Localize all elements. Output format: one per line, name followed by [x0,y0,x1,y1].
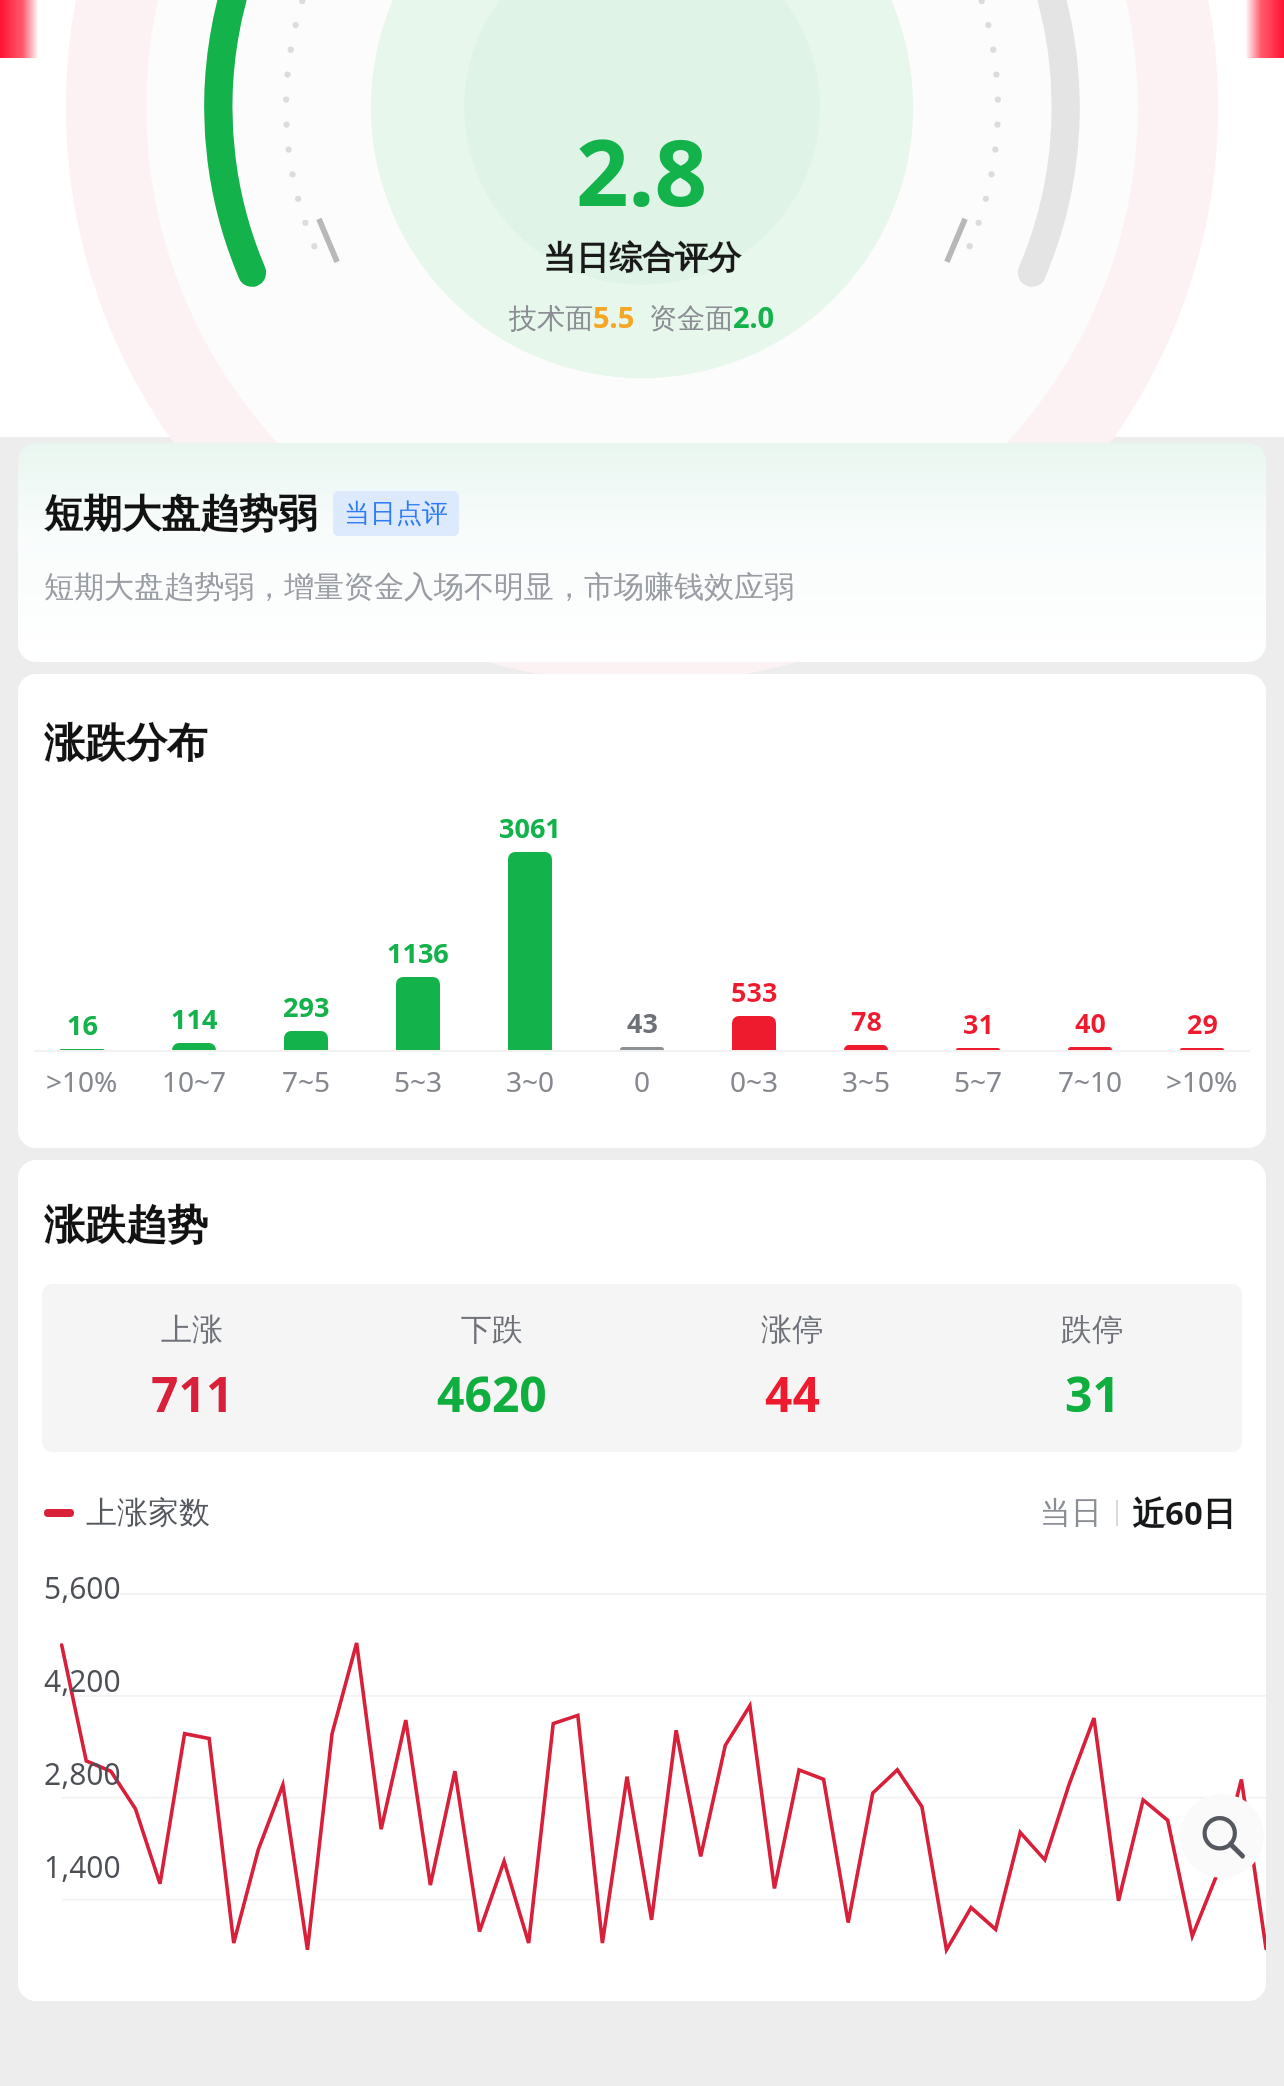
staticText: 0 [634,1062,651,1100]
staticText: 4620 [437,1361,547,1426]
staticText: 跌停 [1061,1310,1123,1349]
staticText: 533 [731,973,778,1010]
staticText: 上涨家数 [86,1493,210,1532]
staticText: 上涨 [161,1310,223,1349]
button[interactable]: 近60日 [1128,1490,1240,1535]
staticText: 31 [1065,1361,1120,1426]
button[interactable]: 短期大盘趋势弱 [18,443,1266,662]
staticText: 3~0 [506,1062,555,1100]
staticText: 5,600 [44,1567,121,1608]
staticText: >10% [46,1062,118,1100]
staticText: 技术面5.5 资金面2.0 [509,297,775,336]
staticText: 当日 [1040,1493,1102,1532]
staticText: 7~10 [1058,1062,1123,1100]
staticText: 40 [1075,1004,1106,1041]
button[interactable]: 当日 [1036,1493,1106,1532]
staticText: 涨停 [761,1310,823,1349]
staticText: 78 [851,1002,882,1039]
staticText: 293 [283,988,330,1025]
staticText: 短期大盘趋势弱 [44,489,317,538]
staticText: 1136 [387,934,449,971]
staticText: >10% [1166,1062,1238,1100]
staticText: 4,200 [44,1660,121,1701]
staticText: 1,400 [44,1846,121,1887]
staticText: 43 [627,1004,658,1041]
staticText: 2,800 [44,1753,121,1794]
staticText: 5~7 [954,1062,1003,1100]
staticText: 5~3 [394,1062,443,1100]
staticText: 当日综合评分 [543,237,741,279]
staticText: 114 [171,1000,218,1037]
staticText: 29 [1187,1005,1218,1042]
staticText: 16 [67,1006,98,1043]
button[interactable]: Search [1180,1794,1264,1878]
staticText: 3~5 [842,1062,891,1100]
staticText: 当日点评 [344,497,448,530]
staticText: 短期大盘趋势弱，增量资金入场不明显，市场赚钱效应弱 [44,568,794,606]
staticText: 44 [765,1361,820,1426]
staticText: 下跌 [461,1310,523,1349]
staticText: 0~3 [730,1062,779,1100]
staticText: 近60日 [1132,1490,1236,1535]
staticText: 涨跌分布 [44,718,208,770]
staticText: 7~5 [282,1062,331,1100]
button[interactable]: 涨跌分布 [18,674,1266,1148]
staticText: 31 [963,1005,994,1042]
staticText: 10~7 [162,1062,227,1100]
staticText: 711 [151,1361,234,1426]
staticText: 2.8 [576,108,708,233]
staticText: 涨跌趋势 [44,1200,208,1252]
staticText: 3061 [499,809,561,846]
